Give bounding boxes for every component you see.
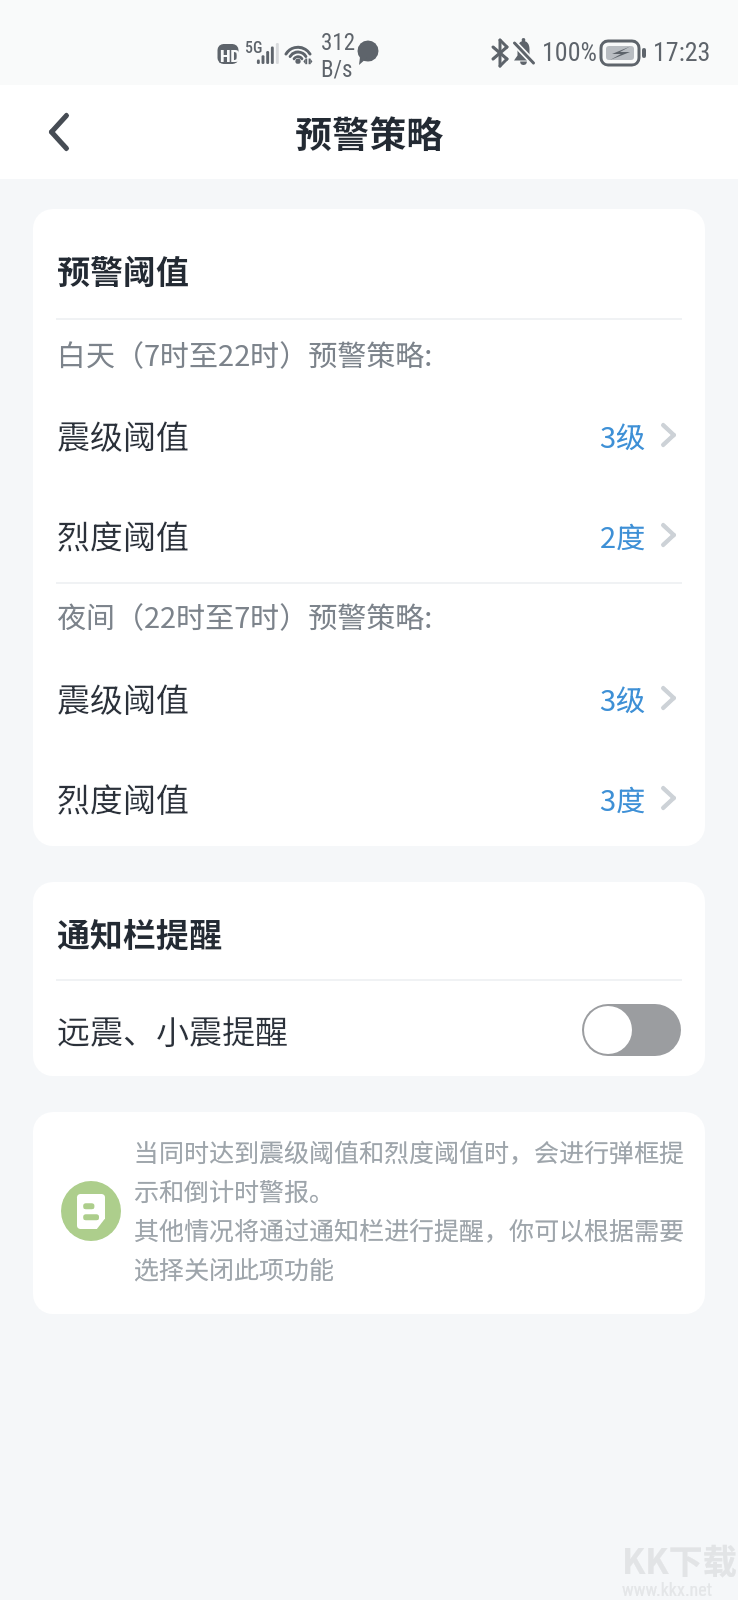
staticText: 远震、小震提醒: [57, 1006, 288, 1054]
staticText: 17:23: [653, 37, 711, 67]
staticText: 312: [321, 29, 356, 56]
button[interactable]: Back: [26, 99, 92, 165]
staticText: 震级阈值: [57, 411, 189, 459]
staticText: B/s: [321, 56, 353, 83]
staticText: 震级阈值: [57, 674, 189, 722]
staticText: 3度: [600, 777, 646, 819]
button[interactable]: 烈度阈值: [33, 480, 705, 582]
button[interactable]: 远震、小震提醒: [33, 981, 705, 1076]
staticText: 当同时达到震级阈值和烈度阈值时，会进行弹框提 示和倒计时警报。 其他情况将通过通…: [134, 1133, 685, 1286]
staticText: 通知栏提醒: [57, 909, 222, 957]
staticText: 100%: [542, 37, 597, 67]
button[interactable]: Toggle reminder: [582, 1004, 681, 1056]
staticText: www.kkx.net: [622, 1579, 713, 1600]
staticText: 白天（7时至22时）预警策略:: [57, 332, 433, 374]
button[interactable]: 烈度阈值: [33, 749, 705, 846]
staticText: 3级: [600, 677, 646, 719]
staticText: 预警阈值: [57, 246, 189, 294]
staticText: 夜间（22时至7时）预警策略:: [57, 594, 433, 636]
staticText: 烈度阈值: [57, 511, 189, 559]
staticText: 3级: [600, 414, 646, 456]
staticText: KK下载: [622, 1535, 737, 1584]
staticText: 烈度阈值: [57, 774, 189, 822]
button[interactable]: 震级阈值: [33, 398, 705, 480]
button[interactable]: 震级阈值: [33, 660, 705, 749]
staticText: 5G: [245, 38, 263, 57]
staticText: HD: [220, 46, 241, 66]
staticText: 2度: [600, 514, 646, 556]
staticText: 预警策略: [295, 105, 443, 159]
